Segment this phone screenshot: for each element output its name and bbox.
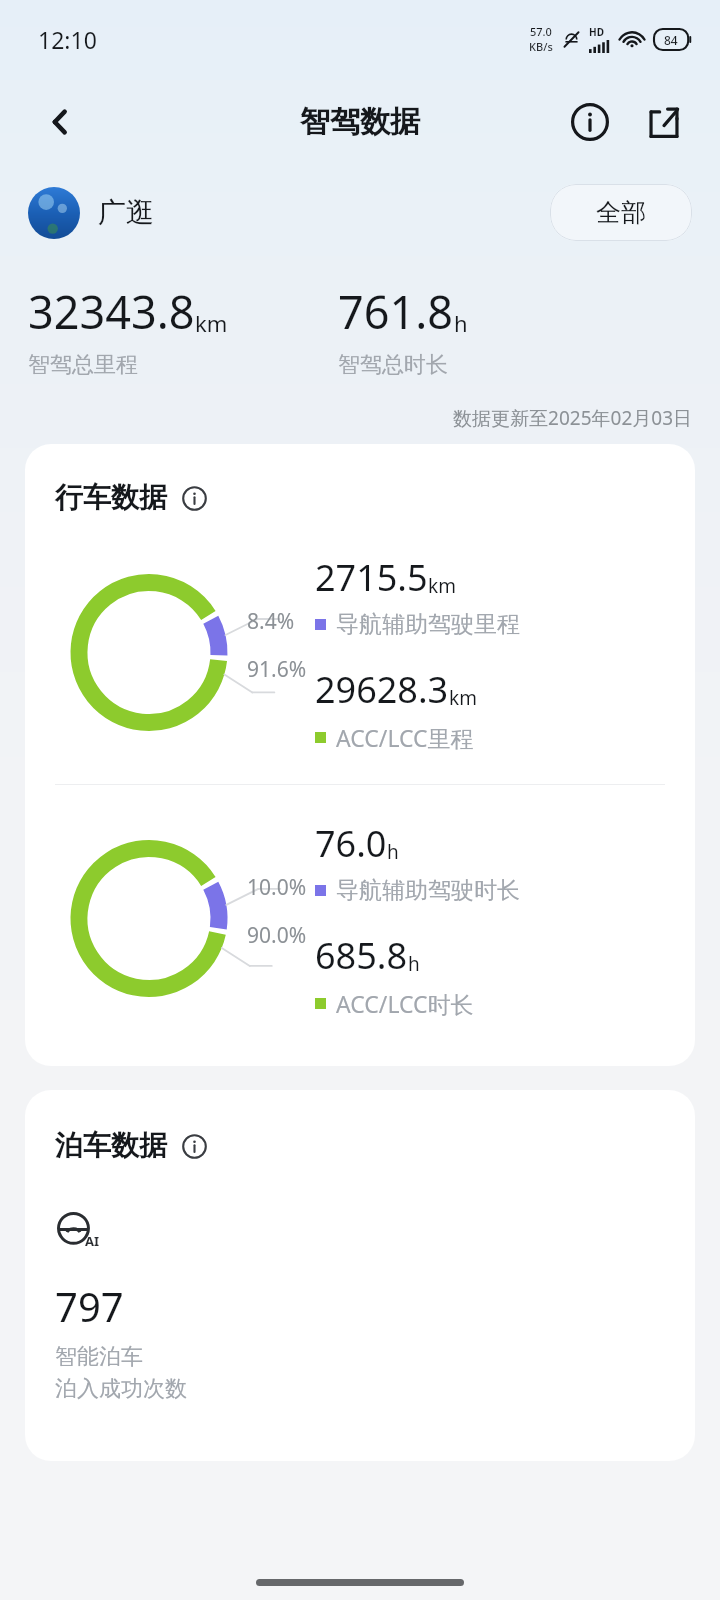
staticText: HD: [589, 25, 604, 39]
staticText: 泊车数据: [55, 1128, 167, 1163]
staticText: h: [387, 839, 399, 865]
staticText: 797: [55, 1279, 124, 1333]
button[interactable]: Info: [564, 96, 616, 148]
button[interactable]: Back: [34, 96, 86, 148]
staticText: 智驾总里程: [28, 351, 138, 379]
staticText: km: [428, 573, 456, 599]
staticText: 2715.5: [315, 553, 428, 602]
button[interactable]: 行车数据: [25, 444, 695, 1066]
staticText: 10.0%: [247, 873, 307, 902]
staticText: 广逛: [98, 195, 154, 230]
staticText: 泊入成功次数: [55, 1375, 187, 1403]
staticText: 29628.3: [315, 665, 449, 714]
staticText: ACC/LCC时长: [336, 988, 474, 1019]
staticText: 行车数据: [55, 480, 167, 515]
staticText: h: [408, 951, 420, 977]
staticText: KB/s: [529, 39, 553, 54]
staticText: 全部: [596, 197, 646, 228]
staticText: 32343.8: [28, 281, 195, 342]
staticText: 57.0: [530, 24, 552, 39]
button[interactable]: More info: [179, 1131, 209, 1161]
staticText: 导航辅助驾驶里程: [336, 610, 520, 639]
staticText: 90.0%: [247, 921, 307, 950]
staticText: km: [449, 685, 477, 711]
staticText: h: [454, 308, 468, 338]
staticText: 761.8: [338, 281, 454, 342]
staticText: ACC/LCC里程: [336, 722, 474, 753]
staticText: 智驾数据: [300, 103, 420, 141]
staticText: 91.6%: [247, 655, 307, 684]
staticText: 导航辅助驾驶时长: [336, 876, 520, 905]
staticText: 数据更新至2025年02月03日: [0, 405, 692, 431]
staticText: 84: [664, 32, 678, 48]
staticText: 685.8: [315, 931, 408, 980]
button[interactable]: 泊车数据: [25, 1090, 695, 1461]
staticText: 12:10: [38, 24, 97, 55]
button[interactable]: More info: [179, 483, 209, 513]
staticText: 智驾总时长: [338, 351, 448, 379]
staticText: 智能泊车: [55, 1343, 143, 1371]
staticText: km: [195, 308, 228, 338]
staticText: AI: [85, 1232, 100, 1250]
staticText: 76.0: [315, 819, 387, 868]
button[interactable]: Share: [638, 96, 690, 148]
staticText: 8.4%: [247, 607, 295, 636]
button[interactable]: 全部: [550, 184, 692, 241]
